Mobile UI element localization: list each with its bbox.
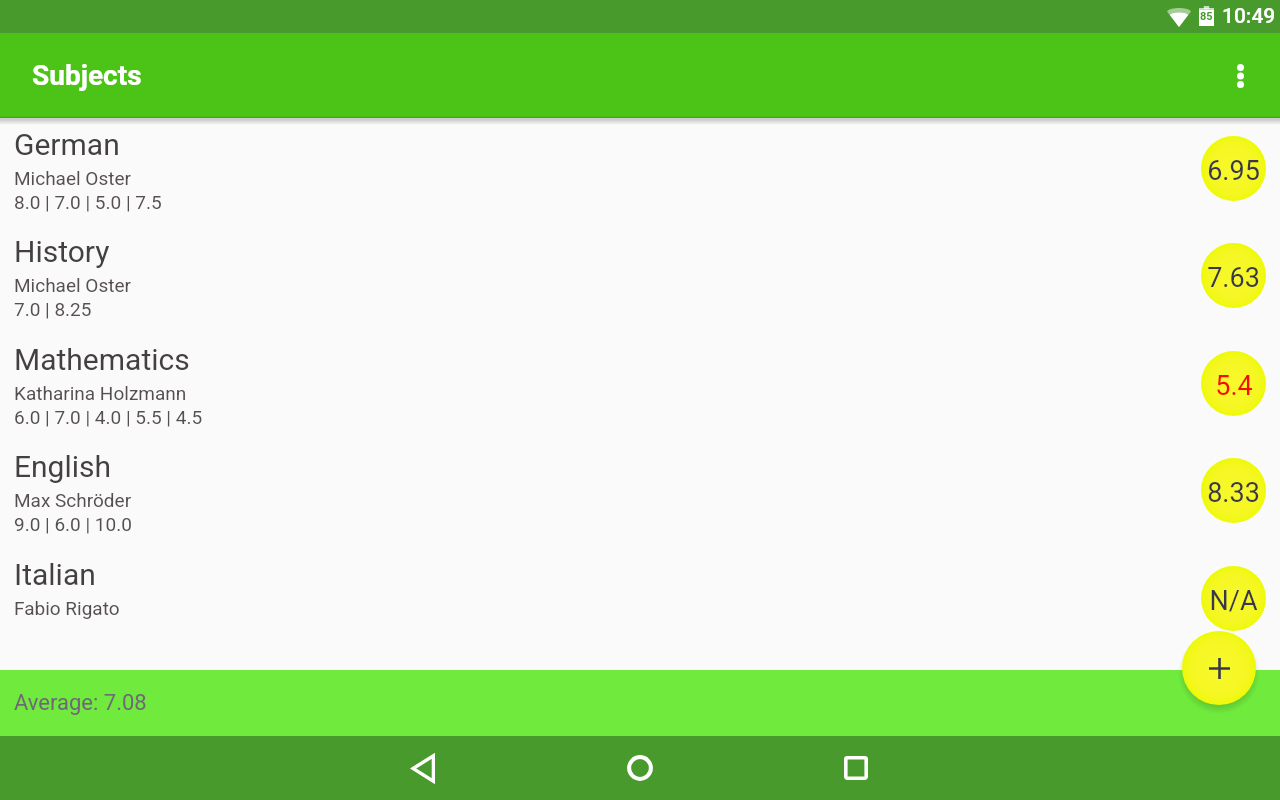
button[interactable]: Home bbox=[612, 740, 668, 796]
staticText: English bbox=[14, 449, 112, 484]
button[interactable]: Back bbox=[396, 740, 452, 796]
staticText: Michael Oster bbox=[14, 274, 131, 296]
staticText: German bbox=[14, 127, 120, 162]
button[interactable]: Add subject bbox=[1182, 631, 1256, 705]
staticText: 6.0 | 7.0 | 4.0 | 5.5 | 4.5 bbox=[14, 406, 203, 428]
staticText: History bbox=[14, 234, 110, 269]
staticText: 5.4 bbox=[1215, 370, 1253, 402]
staticText: 8.0 | 7.0 | 5.0 | 7.5 bbox=[14, 191, 162, 213]
staticText: Max Schröder bbox=[14, 489, 132, 511]
staticText: 9.0 | 6.0 | 10.0 bbox=[14, 513, 132, 535]
button[interactable]: Mathematics bbox=[0, 333, 1280, 440]
button[interactable]: History bbox=[0, 225, 1280, 332]
button[interactable]: More options bbox=[1216, 52, 1264, 100]
staticText: Michael Oster bbox=[14, 167, 131, 189]
staticText: 8.33 bbox=[1207, 477, 1260, 509]
staticText: Katharina Holzmann bbox=[14, 382, 187, 404]
staticText: Fabio Rigato bbox=[14, 597, 120, 619]
staticText: N/A bbox=[1209, 585, 1258, 617]
staticText: Subjects bbox=[32, 59, 142, 92]
staticText: 85 bbox=[1200, 10, 1213, 23]
staticText: 10:49 bbox=[1222, 4, 1276, 29]
staticText: 6.95 bbox=[1207, 155, 1260, 187]
button[interactable]: Recents bbox=[828, 740, 884, 796]
staticText: Italian bbox=[14, 557, 96, 592]
button[interactable]: English bbox=[0, 440, 1280, 547]
staticText: Mathematics bbox=[14, 342, 190, 377]
button[interactable]: Italian bbox=[0, 548, 1280, 655]
staticText: 7.0 | 8.25 bbox=[14, 298, 92, 320]
staticText: Average: 7.08 bbox=[14, 690, 147, 716]
button[interactable]: German bbox=[0, 118, 1280, 225]
staticText: 7.63 bbox=[1207, 262, 1260, 294]
